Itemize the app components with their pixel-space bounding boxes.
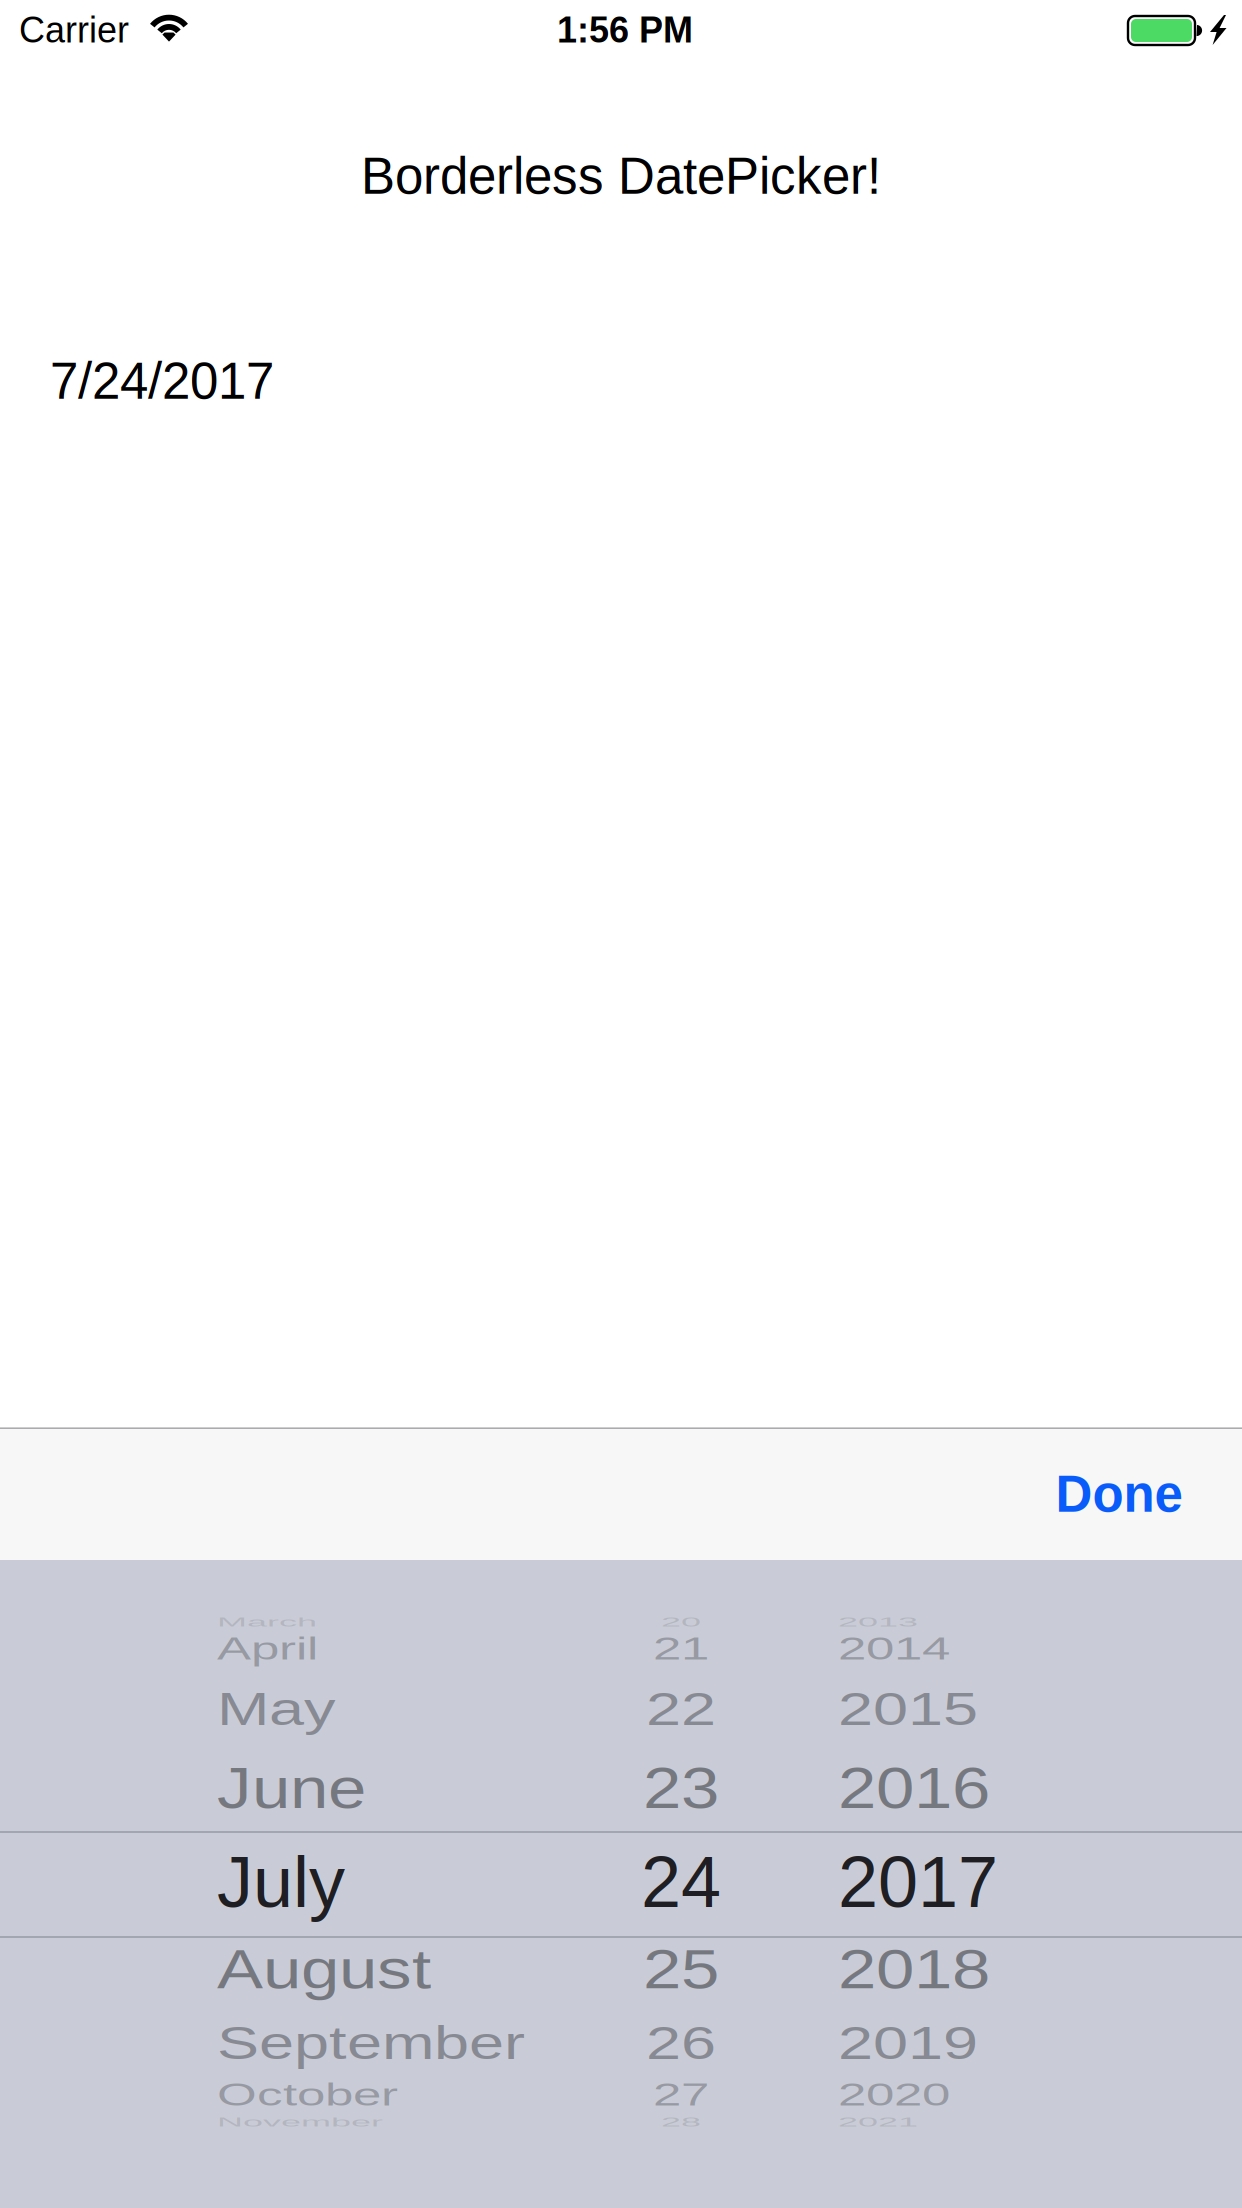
staticText: September xyxy=(217,2008,525,2078)
button[interactable]: Done xyxy=(1029,1428,1209,1560)
staticText: 2020 xyxy=(838,2066,950,2123)
staticText: 2017 xyxy=(838,1842,998,1922)
staticText: July xyxy=(217,1842,345,1922)
staticText: 27 xyxy=(653,2066,709,2123)
staticText: 26 xyxy=(646,2008,716,2078)
staticText: October xyxy=(217,2066,398,2123)
staticText: June xyxy=(217,1749,366,1827)
staticText: 28 xyxy=(661,2102,701,2142)
staticText: 24 xyxy=(641,1842,721,1922)
staticText: 23 xyxy=(643,1749,719,1827)
staticText: August xyxy=(217,1930,431,2008)
staticText: 25 xyxy=(643,1930,719,2008)
staticText: 20 xyxy=(661,1602,701,1642)
staticText: 1:56 PM xyxy=(557,10,693,50)
staticText: 22 xyxy=(646,1674,716,1744)
staticText: November xyxy=(217,2102,383,2142)
staticText: 2019 xyxy=(838,2008,978,2078)
staticText: 2013 xyxy=(838,1602,918,1642)
staticText: Done xyxy=(1055,1465,1182,1522)
staticText: Carrier xyxy=(19,10,129,50)
staticText: 21 xyxy=(653,1620,709,1677)
staticText: March xyxy=(217,1602,317,1642)
staticText: 2018 xyxy=(838,1930,990,2008)
staticText: Borderless DatePicker! xyxy=(361,147,881,204)
staticText: 2015 xyxy=(838,1674,978,1744)
staticText: 2014 xyxy=(838,1620,950,1677)
button[interactable]: Date picker, July 24 2017 xyxy=(0,1560,1242,2208)
staticText: 2016 xyxy=(838,1749,990,1827)
staticText: 2021 xyxy=(838,2102,918,2142)
staticText: 7/24/2017 xyxy=(50,352,274,409)
staticText: May xyxy=(217,1674,336,1744)
staticText: April xyxy=(217,1620,318,1677)
